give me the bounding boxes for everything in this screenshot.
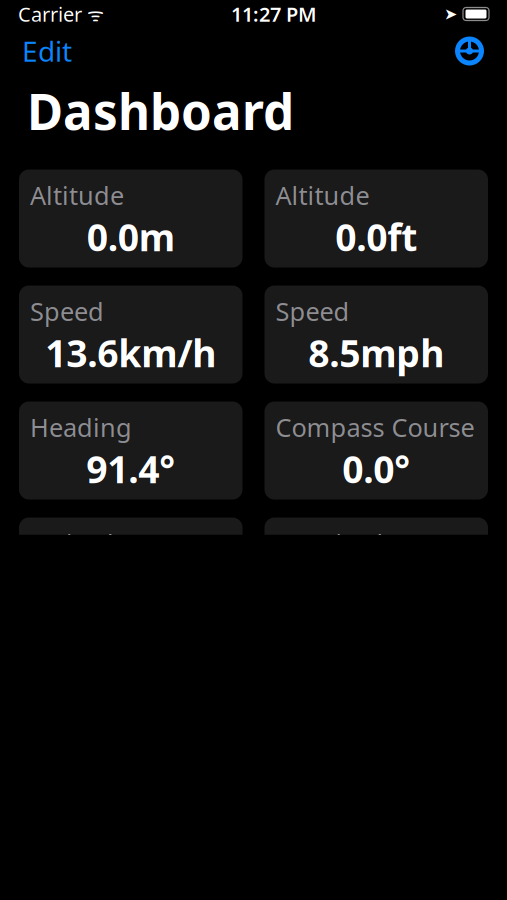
- staticText: Dashboard: [27, 78, 294, 143]
- staticText: Carrier: [18, 1, 82, 27]
- staticText: 0.0°: [342, 444, 410, 494]
- staticText: Altitude: [30, 178, 124, 212]
- button[interactable]: Heading: [19, 401, 242, 499]
- staticText: 11:27 PM: [231, 1, 317, 27]
- staticText: Longitude: [275, 526, 397, 560]
- button[interactable]: Settings: [450, 31, 489, 70]
- staticText: 0.0ft: [335, 212, 417, 262]
- button[interactable]: Edit: [18, 28, 76, 74]
- staticText: 0.0m: [87, 212, 175, 262]
- staticText: Speed: [30, 294, 104, 328]
- staticText: Latitude: [30, 526, 128, 560]
- button[interactable]: Compass Course: [264, 401, 488, 499]
- button[interactable]: Altitude: [264, 169, 488, 267]
- staticText: ᯤ: [82, 2, 104, 26]
- staticText: 8.5mph: [308, 328, 444, 378]
- staticText: Speed: [275, 294, 349, 328]
- staticText: Heading: [30, 410, 132, 444]
- staticText: Altitude: [275, 178, 369, 212]
- staticText: Edit: [22, 32, 72, 70]
- staticText: 91.4°: [86, 444, 175, 494]
- button[interactable]: Altitude: [19, 169, 242, 267]
- button[interactable]: Speed: [19, 285, 242, 383]
- button[interactable]: Latitude: [19, 517, 242, 615]
- staticText: Compass Course: [275, 410, 474, 444]
- button[interactable]: Speed: [264, 285, 488, 383]
- button[interactable]: Longitude: [264, 517, 488, 615]
- staticText: 13.6km/h: [45, 328, 216, 378]
- staticText: ➤: [444, 5, 457, 23]
